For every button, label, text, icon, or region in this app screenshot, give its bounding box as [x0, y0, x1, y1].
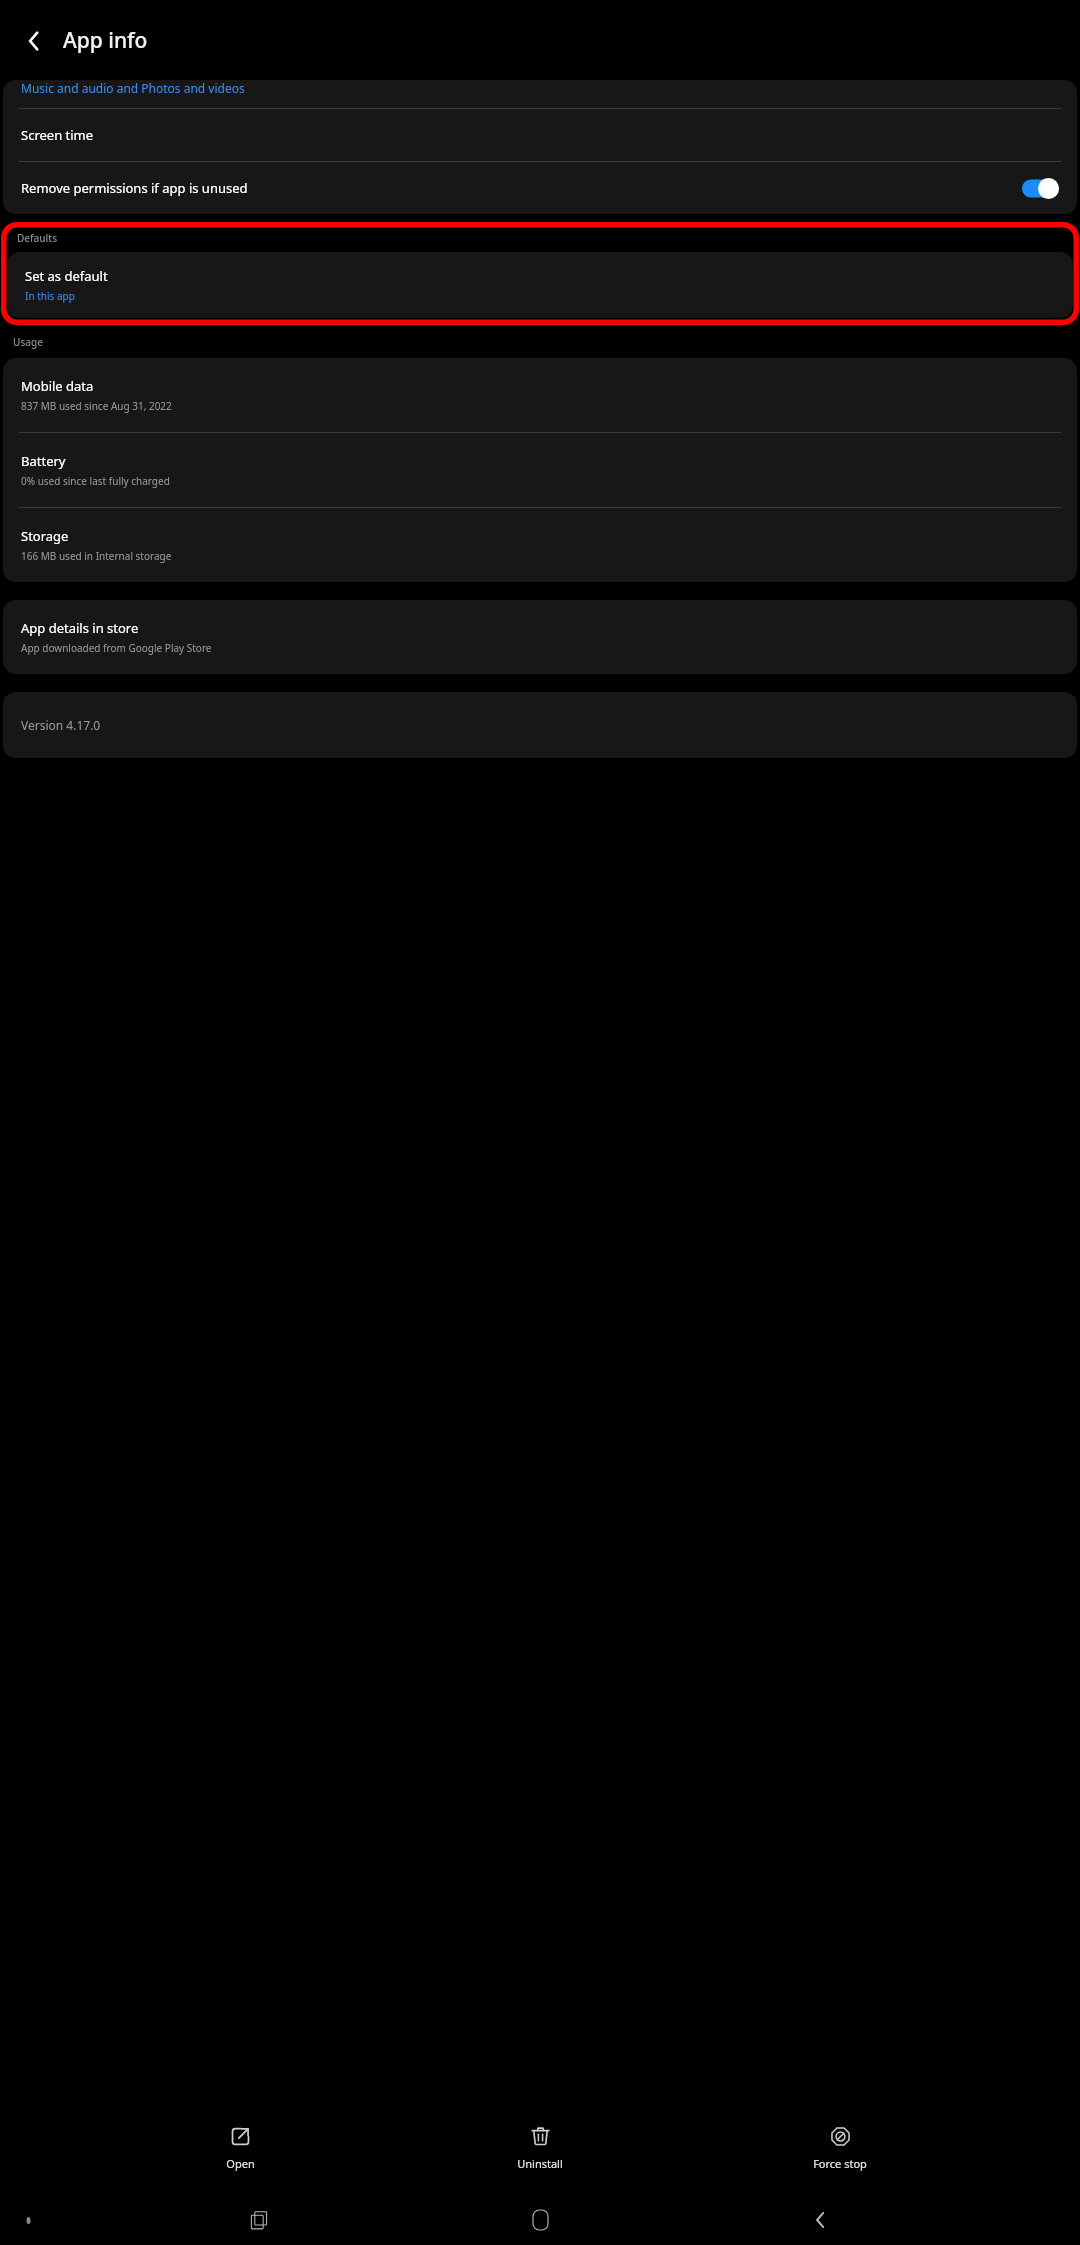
- other: Uninstall: [530, 2126, 551, 2147]
- button[interactable]: Battery: [3, 433, 1077, 507]
- staticText: 837 MB used since Aug 31, 2022: [21, 399, 172, 413]
- other: Open: [230, 2126, 251, 2147]
- staticText: Battery: [21, 452, 66, 470]
- button[interactable]: Remove permissions toggle: [1022, 178, 1059, 199]
- button[interactable]: Screen time: [3, 109, 1077, 161]
- other: Force stop: [830, 2126, 851, 2147]
- button[interactable]: Back: [800, 2200, 840, 2240]
- staticText: 0% used since last fully charged: [21, 474, 170, 488]
- staticText: 166 MB used in Internal storage: [21, 549, 172, 563]
- staticText: Defaults: [17, 231, 57, 245]
- staticText: Version 4.17.0: [21, 717, 101, 733]
- staticText: Set as default: [25, 267, 108, 285]
- staticText: App info: [63, 26, 148, 55]
- other: Indicator: [18, 2210, 38, 2230]
- button[interactable]: Recents: [240, 2200, 280, 2240]
- staticText: Open: [226, 2156, 255, 2171]
- button[interactable]: Open: [180, 2124, 300, 2173]
- staticText: Force stop: [813, 2156, 867, 2171]
- staticText: Usage: [13, 335, 43, 349]
- button[interactable]: Home: [520, 2200, 560, 2240]
- staticText: App details in store: [21, 619, 139, 637]
- staticText: Screen time: [21, 126, 94, 144]
- staticText: Storage: [21, 527, 69, 545]
- staticText: App downloaded from Google Play Store: [21, 641, 212, 655]
- staticText: Remove permissions if app is unused: [21, 179, 248, 197]
- button[interactable]: App details in store: [3, 600, 1077, 674]
- button[interactable]: Force stop: [780, 2124, 900, 2173]
- button[interactable]: Storage: [3, 508, 1077, 582]
- button[interactable]: Music and audio and Photos and videos: [3, 80, 1077, 108]
- button[interactable]: Mobile data: [3, 358, 1077, 432]
- button[interactable]: Remove permissions if app is unused: [3, 162, 1077, 214]
- staticText: Uninstall: [517, 2156, 563, 2171]
- staticText: In this app: [25, 289, 75, 303]
- staticText: Mobile data: [21, 377, 94, 395]
- button[interactable]: Uninstall: [480, 2124, 600, 2173]
- staticText: Music and audio and Photos and videos: [21, 80, 245, 96]
- button[interactable]: Navigate up: [10, 17, 57, 64]
- button[interactable]: Set as default: [7, 252, 1073, 318]
